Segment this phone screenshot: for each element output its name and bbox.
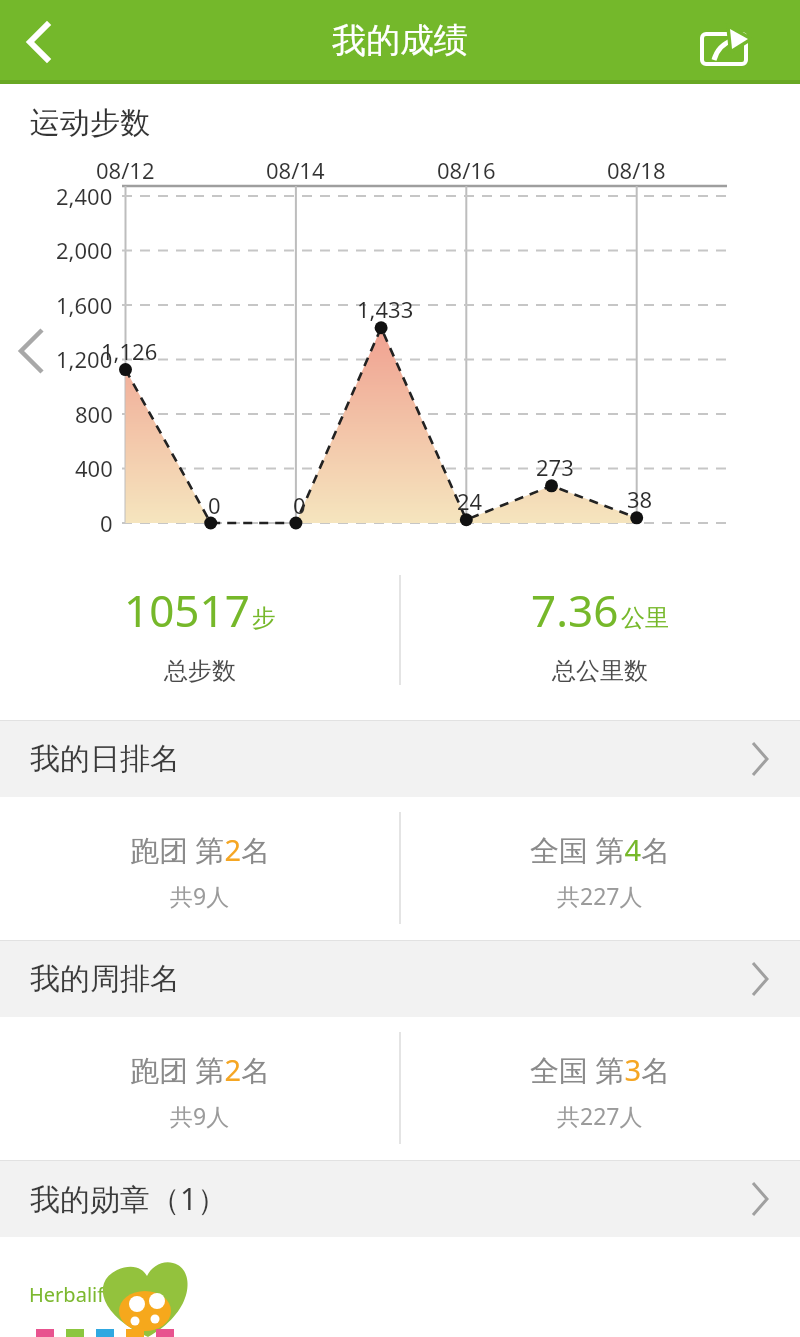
staticText: 0 [208, 490, 221, 520]
staticText: 我的日排名 [30, 740, 180, 778]
staticText: 全国 第4名 [530, 830, 671, 870]
staticText: 08/12 [96, 155, 155, 185]
staticText: 跑团 第2名 [130, 1050, 271, 1090]
staticText: 1,433 [357, 294, 414, 324]
staticText: 全国 第3名 [530, 1050, 671, 1090]
button[interactable]: 我的周排名 [0, 940, 800, 1017]
staticText: 38 [627, 484, 653, 514]
staticText: 800 [75, 399, 113, 429]
staticText: 400 [75, 453, 113, 483]
staticText: 我的成绩 [332, 19, 468, 62]
button[interactable] [700, 18, 748, 66]
staticText: 我的周排名 [30, 960, 180, 998]
button[interactable]: 我的勋章（1） [0, 1160, 800, 1237]
staticText: 跑团 第2名 [130, 830, 271, 870]
staticText: 1,200 [56, 344, 113, 374]
staticText: 7.36 [531, 580, 619, 640]
staticText: 2,400 [56, 181, 113, 211]
staticText: 总公里数 [552, 656, 648, 686]
staticText: 1,600 [56, 290, 113, 320]
staticText: 24 [457, 486, 483, 516]
button[interactable]: 跑团 第2名 [0, 1017, 400, 1160]
staticText: 总步数 [164, 656, 236, 686]
staticText: 共227人 [557, 1100, 643, 1131]
staticText: 我的勋章（1） [30, 1178, 228, 1219]
staticText: 公里 [621, 603, 669, 633]
staticText: 08/14 [266, 155, 325, 185]
staticText: 运动步数 [30, 104, 150, 142]
button[interactable]: 我的日排名 [0, 720, 800, 797]
staticText: 08/16 [437, 155, 496, 185]
staticText: 0 [100, 508, 113, 538]
staticText: 1,126 [101, 336, 158, 366]
staticText: 10517 [124, 580, 250, 640]
staticText: 2,000 [56, 235, 113, 265]
staticText: 共9人 [170, 1100, 230, 1131]
button[interactable]: 跑团 第2名 [0, 797, 400, 940]
button[interactable] [16, 20, 60, 64]
staticText: 08/18 [607, 155, 666, 185]
staticText: 步 [252, 603, 276, 633]
button[interactable]: 全国 第4名 [400, 797, 800, 940]
staticText: 共227人 [557, 880, 643, 911]
staticText: Herbalife [29, 1281, 116, 1308]
button[interactable]: 全国 第3名 [400, 1017, 800, 1160]
staticText: 0 [293, 490, 306, 520]
staticText: 共9人 [170, 880, 230, 911]
staticText: 273 [536, 452, 574, 482]
